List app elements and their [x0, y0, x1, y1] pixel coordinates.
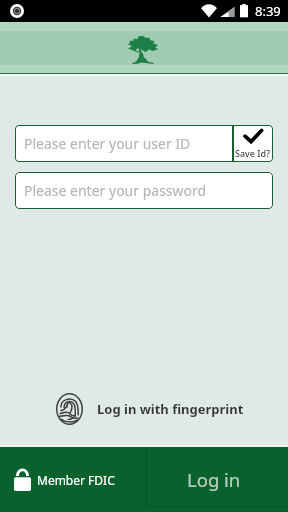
staticText: Log in with fingerprint	[97, 400, 244, 418]
staticText: 8:39	[255, 2, 281, 20]
staticText: Save Id?	[235, 147, 271, 159]
button[interactable]: Log in	[146, 447, 288, 512]
staticText: Member FDIC	[37, 472, 115, 488]
staticText: Please enter your user ID	[24, 134, 191, 153]
other: Log in with fingerprint	[56, 393, 83, 425]
staticText: Log in	[187, 467, 241, 492]
button[interactable]: Member FDIC	[0, 447, 146, 512]
button[interactable]: Save Id?	[233, 125, 273, 162]
button[interactable]: Please enter your password	[15, 172, 273, 209]
button[interactable]: Please enter your user ID	[15, 125, 233, 162]
button[interactable]: Log in with fingerprint	[56, 393, 244, 425]
staticText: Please enter your password	[24, 181, 207, 200]
other: Member FDIC	[14, 469, 31, 491]
